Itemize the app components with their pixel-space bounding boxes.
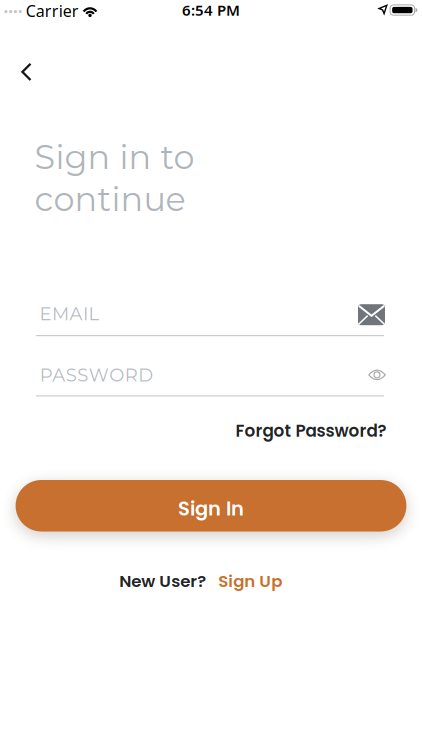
staticText: 6:54 PM bbox=[182, 0, 240, 20]
staticText: EMAIL bbox=[39, 303, 99, 325]
button[interactable]: Sign In bbox=[16, 480, 406, 531]
button[interactable]: Forgot Password? bbox=[236, 419, 387, 442]
staticText: Sign In bbox=[178, 495, 244, 522]
staticText: Sign Up bbox=[218, 569, 282, 593]
staticText: Sign in to continue bbox=[34, 136, 194, 220]
staticText: Forgot Password? bbox=[236, 419, 387, 442]
button[interactable]: Sign Up bbox=[218, 569, 282, 593]
button[interactable]: Back bbox=[8, 52, 44, 92]
staticText: PASSWORD bbox=[40, 364, 153, 386]
staticText: New User? bbox=[119, 569, 206, 593]
staticText: Carrier bbox=[26, 0, 79, 22]
button[interactable]: Show password bbox=[362, 364, 392, 386]
